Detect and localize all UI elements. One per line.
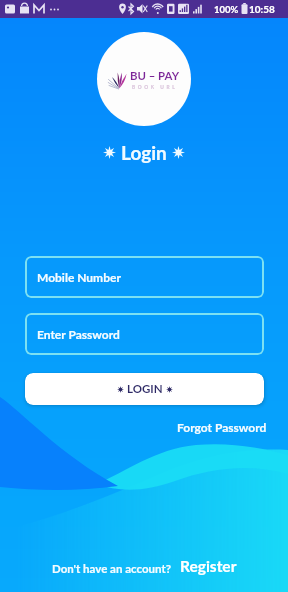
staticText: Enter Password <box>37 327 120 341</box>
staticText: BOOK URL <box>132 84 178 90</box>
staticText: Mobile Number <box>37 270 121 284</box>
staticText: Login <box>121 141 167 164</box>
button[interactable]: LOGIN <box>25 373 264 405</box>
button[interactable]: Forgot Password <box>177 420 267 434</box>
other: BU-PAY logo <box>97 32 191 126</box>
staticText: LOGIN <box>127 382 163 396</box>
staticText: 10:58 <box>249 3 275 15</box>
staticText: BU – PAY <box>130 69 180 83</box>
staticText: 100% <box>214 4 239 15</box>
staticText: Don't have an account? <box>52 562 172 576</box>
button[interactable]: Mobile Number <box>25 256 264 298</box>
button[interactable]: Register <box>180 557 237 576</box>
button[interactable]: Enter Password <box>25 313 264 355</box>
